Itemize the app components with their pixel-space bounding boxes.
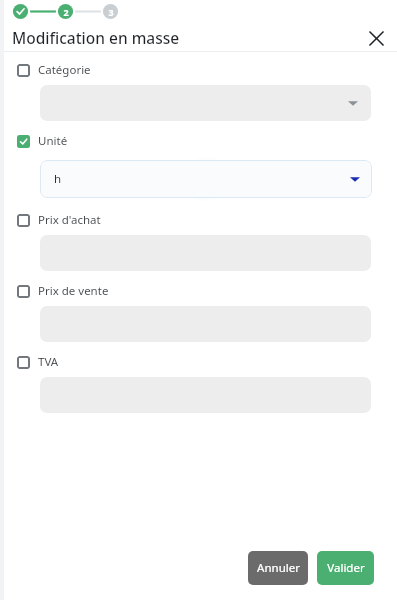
staticText: Prix de vente — [38, 283, 109, 299]
staticText: Catégorie — [38, 62, 91, 78]
button[interactable]: Valider — [317, 551, 374, 585]
staticText: TVA — [38, 354, 59, 370]
button[interactable]: h — [40, 160, 372, 198]
button[interactable]: Prix d'achat — [17, 212, 101, 228]
button[interactable]: Fermer — [363, 25, 389, 51]
staticText: 2 — [63, 6, 69, 18]
button[interactable]: Unité — [17, 133, 68, 149]
staticText: Annuler — [257, 560, 300, 576]
staticText: h — [54, 171, 62, 187]
staticText: Unité — [38, 133, 68, 149]
button[interactable]: Prix de vente — [17, 283, 109, 299]
staticText: Modification en masse — [12, 27, 180, 48]
staticText: Prix d'achat — [38, 212, 101, 228]
button[interactable]: Annuler — [248, 551, 308, 585]
button[interactable] — [40, 85, 371, 121]
button[interactable]: TVA — [17, 354, 59, 370]
staticText: 3 — [108, 6, 114, 18]
staticText: Valider — [327, 560, 365, 576]
button[interactable]: Catégorie — [17, 62, 91, 78]
